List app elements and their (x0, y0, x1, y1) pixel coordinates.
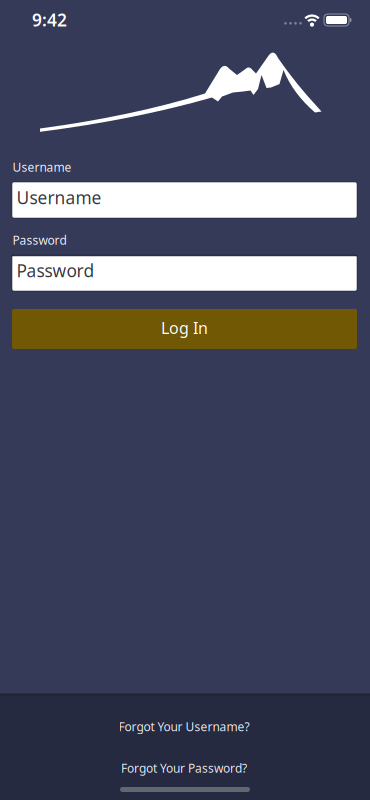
staticText: Username (16, 186, 101, 209)
staticText: Forgot Your Username? (118, 718, 249, 734)
staticText: Password (12, 232, 66, 248)
button[interactable]: Username (12, 182, 357, 218)
staticText: Log In (161, 317, 208, 338)
staticText: Username (12, 159, 71, 175)
button[interactable]: Forgot Your Password? (113, 756, 255, 780)
staticText: 9:42 (32, 8, 67, 31)
button[interactable]: Forgot Your Username? (110, 714, 257, 738)
button[interactable]: Log In (12, 309, 357, 349)
button[interactable]: Password (12, 255, 357, 291)
staticText: Forgot Your Password? (121, 760, 247, 776)
staticText: Password (16, 259, 94, 282)
